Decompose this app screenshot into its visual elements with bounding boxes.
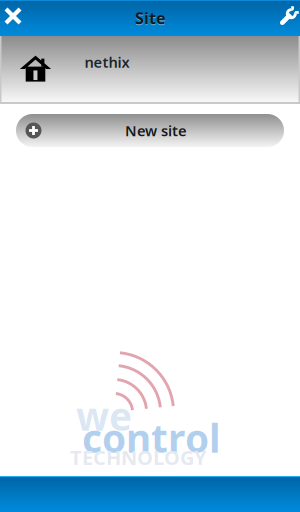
staticText: Site <box>135 8 166 30</box>
button[interactable]: Close <box>0 0 33 36</box>
staticText: TECHNOLOGY <box>70 444 207 471</box>
staticText: nethix <box>84 52 129 72</box>
staticText: control <box>82 412 221 463</box>
staticText: New site <box>125 121 187 140</box>
button[interactable]: New site <box>0 104 300 147</box>
button[interactable]: Settings <box>268 0 300 36</box>
staticText: we <box>76 390 132 441</box>
staticText: Site <box>135 7 166 29</box>
button[interactable]: nethix <box>0 36 300 104</box>
